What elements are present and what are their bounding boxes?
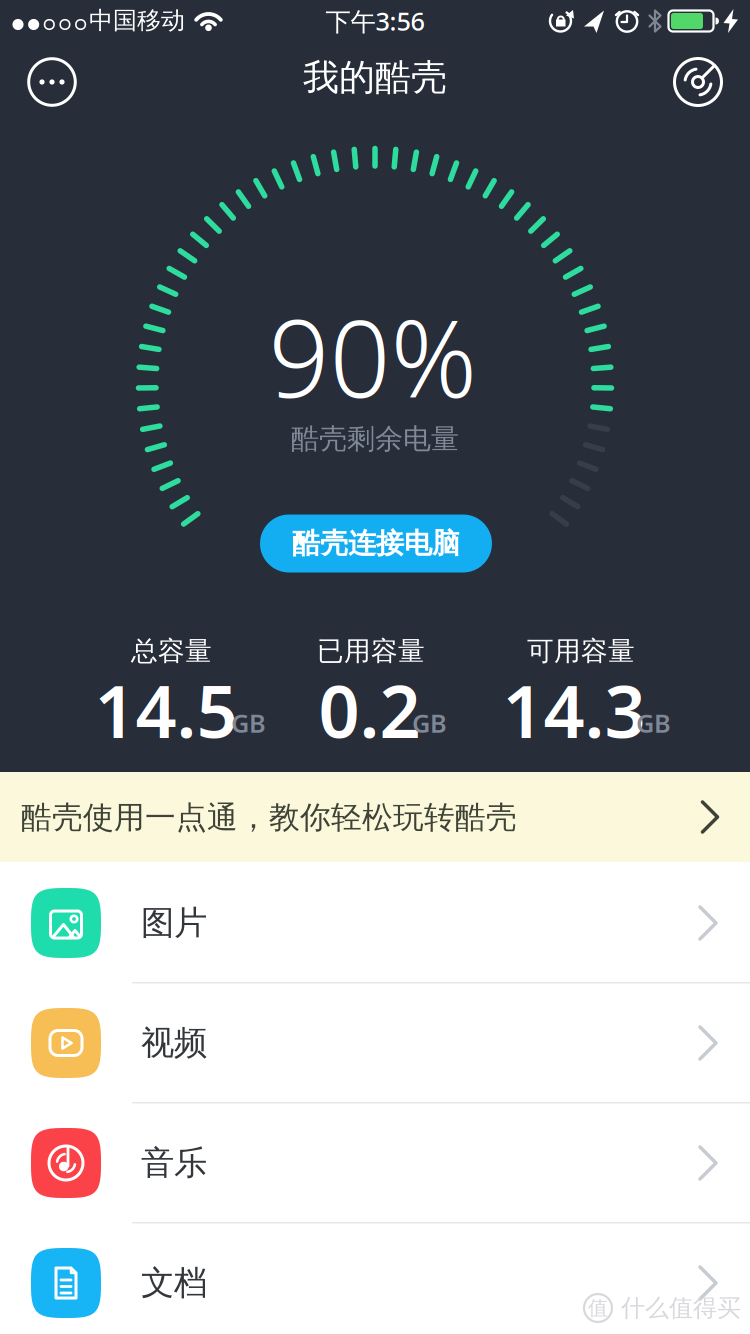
staticText: 下午3:56: [325, 4, 424, 38]
button[interactable]: 文档: [0, 1222, 750, 1334]
staticText: 文档: [141, 1262, 207, 1303]
staticText: 总容量: [131, 635, 212, 667]
staticText: 什么值得买: [621, 1293, 741, 1323]
staticText: GB: [231, 706, 266, 740]
button[interactable]: Device status: [671, 55, 725, 109]
staticText: 视频: [141, 1022, 207, 1063]
staticText: 中国移动: [89, 6, 185, 35]
staticText: 90%: [268, 285, 477, 427]
staticText: 我的酷壳: [303, 55, 447, 100]
staticText: 0.2: [318, 662, 420, 758]
staticText: 音乐: [141, 1142, 207, 1183]
staticText: 14.5: [94, 662, 237, 758]
button[interactable]: 视频: [0, 982, 750, 1102]
staticText: 已用容量: [317, 635, 425, 667]
staticText: 酷壳剩余电量: [291, 422, 459, 456]
staticText: GB: [412, 706, 447, 740]
staticText: 图片: [141, 902, 207, 943]
staticText: 可用容量: [527, 635, 635, 667]
button[interactable]: More: [25, 55, 79, 109]
staticText: GB: [636, 706, 671, 740]
button[interactable]: 酷壳使用一点通，教你轻松玩转酷壳: [0, 772, 750, 862]
staticText: 14.3: [502, 662, 645, 758]
staticText: 酷壳使用一点通，教你轻松玩转酷壳: [21, 799, 517, 836]
button[interactable]: 酷壳连接电脑: [260, 514, 492, 572]
staticText: 酷壳连接电脑: [292, 526, 460, 561]
button[interactable]: 音乐: [0, 1102, 750, 1222]
button[interactable]: 图片: [0, 862, 750, 982]
staticText: 值: [588, 1296, 608, 1320]
